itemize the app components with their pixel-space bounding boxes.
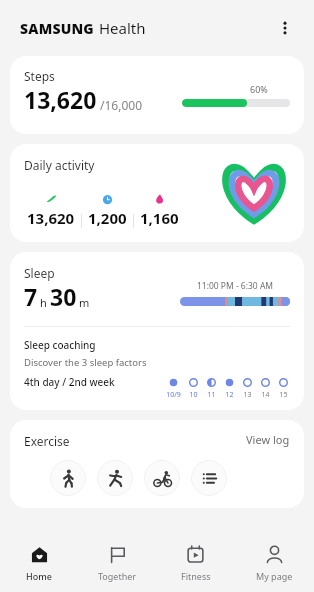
staticText: 14 <box>261 390 270 400</box>
staticText: 13,620 <box>24 84 97 115</box>
button[interactable]: Fitness <box>156 534 235 592</box>
staticText: 7 <box>24 281 38 312</box>
button[interactable]: More exercises <box>191 460 227 496</box>
staticText: Discover the 3 sleep factors <box>24 356 147 369</box>
button[interactable]: View log <box>242 428 294 451</box>
staticText: Sleep coaching <box>24 338 96 352</box>
staticText: Home <box>26 570 52 582</box>
button[interactable]: Daily activity <box>10 144 304 242</box>
staticText: Exercise <box>24 433 70 449</box>
staticText: 10 <box>189 390 198 400</box>
button[interactable]: Steps <box>10 56 304 134</box>
staticText: 1,200 <box>88 208 127 228</box>
button[interactable]: Cycling <box>144 460 180 496</box>
staticText: m <box>79 295 90 310</box>
staticText: Fitness <box>181 570 211 582</box>
button[interactable]: Together <box>78 534 156 592</box>
staticText: 11 <box>207 390 216 400</box>
staticText: 4th day / 2nd week <box>24 375 115 389</box>
button[interactable]: Home <box>0 534 78 592</box>
staticText: My page <box>256 570 293 582</box>
staticText: 15 <box>279 390 288 400</box>
staticText: 11:00 PM - 6:30 AM <box>180 280 290 292</box>
staticText: Daily activity <box>24 157 95 173</box>
staticText: SAMSUNG <box>20 19 94 38</box>
staticText: 10/9 <box>166 390 181 400</box>
staticText: 13 <box>243 390 252 400</box>
staticText: Together <box>98 570 137 582</box>
staticText: /16,000 <box>100 97 143 113</box>
button[interactable]: More options <box>268 11 302 45</box>
staticText: Health <box>99 18 146 38</box>
staticText: 60% <box>250 83 268 95</box>
button[interactable]: My page <box>235 534 314 592</box>
button[interactable]: Exercise <box>10 420 304 508</box>
staticText: h <box>40 295 47 310</box>
button[interactable]: Walking <box>50 460 86 496</box>
button[interactable]: Running <box>97 460 133 496</box>
staticText: 30 <box>50 281 77 312</box>
staticText: Steps <box>24 68 55 84</box>
staticText: Sleep <box>24 265 55 281</box>
staticText: 1,160 <box>140 208 179 228</box>
button[interactable]: Sleep <box>10 252 304 410</box>
staticText: 12 <box>225 390 234 400</box>
staticText: View log <box>246 432 290 447</box>
staticText: 13,620 <box>27 208 75 228</box>
